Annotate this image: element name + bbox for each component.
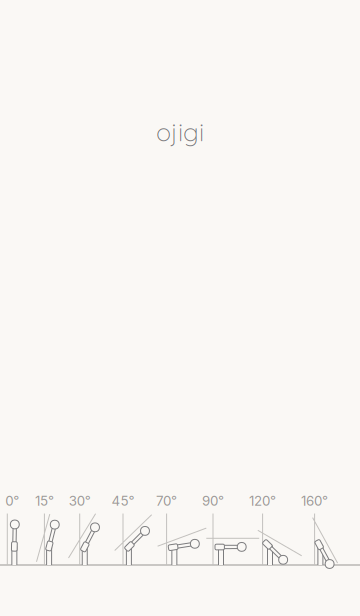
staticText: 0° xyxy=(5,493,19,509)
staticText: 15° xyxy=(35,493,54,509)
staticText: 30° xyxy=(69,493,91,509)
staticText: ojigi xyxy=(156,116,204,148)
staticText: 70° xyxy=(156,493,177,509)
staticText: 160° xyxy=(301,493,328,509)
staticText: 45° xyxy=(111,493,134,509)
staticText: 90° xyxy=(202,493,224,509)
staticText: 120° xyxy=(249,493,276,509)
